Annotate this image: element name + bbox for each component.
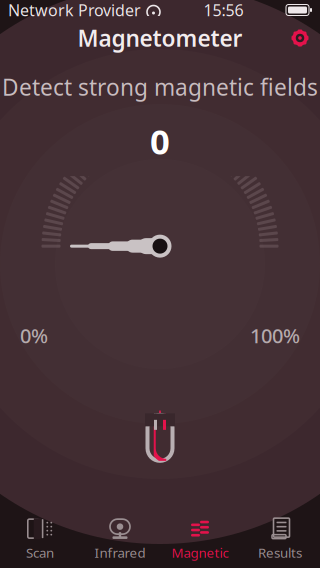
staticText: Scan <box>26 544 54 561</box>
staticText: 100% <box>250 322 300 349</box>
staticText: 0% <box>20 322 48 349</box>
button[interactable]: Scan <box>0 515 80 564</box>
button[interactable]: Infrared <box>80 515 160 564</box>
staticText: Network Provider <box>8 0 141 21</box>
staticText: 0 <box>150 118 170 164</box>
button[interactable]: Settings <box>280 20 320 56</box>
staticText: Magnetic <box>171 544 228 561</box>
staticText: Detect strong magnetic fields <box>2 72 318 102</box>
staticText: 15:56 <box>203 0 243 21</box>
staticText: Infrared <box>94 544 145 561</box>
staticText: Magnetometer <box>77 23 242 53</box>
staticText: Results <box>258 544 302 561</box>
button[interactable]: Magnetic <box>160 515 240 564</box>
button[interactable]: Results <box>240 515 320 564</box>
